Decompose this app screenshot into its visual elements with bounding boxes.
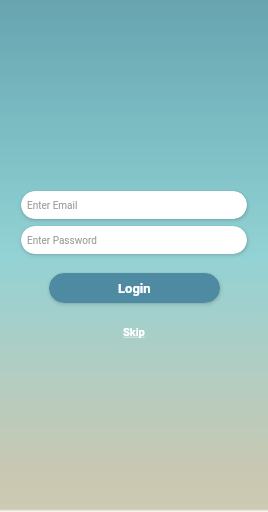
button[interactable]: Skip — [123, 326, 145, 339]
staticText: Skip — [123, 326, 145, 339]
staticText: Login — [118, 281, 151, 296]
staticText: Enter Email — [27, 200, 78, 212]
button[interactable]: Enter Email — [21, 191, 247, 219]
button[interactable]: Login — [49, 273, 220, 303]
button[interactable]: Enter Password — [21, 226, 247, 254]
staticText: Enter Password — [27, 235, 97, 247]
